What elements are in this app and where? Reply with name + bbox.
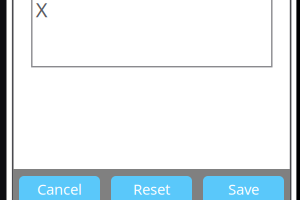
button[interactable]: Save [203, 176, 284, 200]
button[interactable]: X [32, 0, 272, 67]
staticText: X [36, 0, 48, 23]
staticText: Save [228, 179, 259, 199]
button[interactable]: Cancel [19, 176, 100, 200]
staticText: Reset [133, 179, 170, 199]
staticText: Cancel [37, 179, 82, 199]
button[interactable]: Reset [111, 176, 192, 200]
